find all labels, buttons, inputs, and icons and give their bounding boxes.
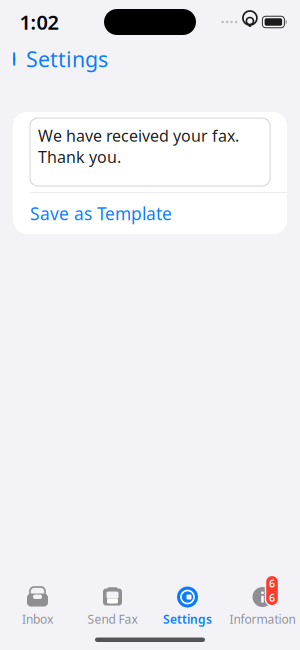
button[interactable]: Inbox	[0, 582, 75, 631]
button[interactable]: Send Fax	[75, 582, 150, 631]
staticText: 66	[269, 576, 275, 605]
staticText: Inbox	[22, 611, 53, 627]
button[interactable]: Save as Template	[13, 193, 287, 234]
button[interactable]: Settings	[150, 582, 225, 631]
staticText: Save as Template	[30, 202, 172, 225]
staticText: Information	[229, 611, 295, 627]
button[interactable]: 66	[225, 582, 300, 631]
staticText: 1:02	[19, 9, 58, 35]
staticText: Send Fax	[87, 611, 137, 627]
button[interactable]: Settings	[0, 39, 108, 79]
staticText: Settings	[163, 611, 212, 627]
staticText: We have received your fax. Thank you.	[38, 125, 239, 167]
staticText: Settings	[26, 45, 108, 73]
